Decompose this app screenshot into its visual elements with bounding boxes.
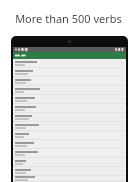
button[interactable] <box>13 86 126 95</box>
button[interactable] <box>13 104 126 113</box>
button[interactable] <box>13 140 126 149</box>
button[interactable]: Verbs list <box>15 54 31 57</box>
button[interactable] <box>13 176 126 182</box>
button[interactable] <box>13 77 126 86</box>
button[interactable] <box>13 158 126 167</box>
button[interactable] <box>13 149 126 158</box>
button[interactable] <box>13 131 126 140</box>
button[interactable] <box>13 167 126 176</box>
button[interactable] <box>13 68 126 77</box>
staticText: More than 500 verbs <box>15 11 122 26</box>
button[interactable] <box>13 122 126 131</box>
button[interactable] <box>13 113 126 122</box>
button[interactable] <box>13 95 126 104</box>
button[interactable] <box>13 59 126 68</box>
